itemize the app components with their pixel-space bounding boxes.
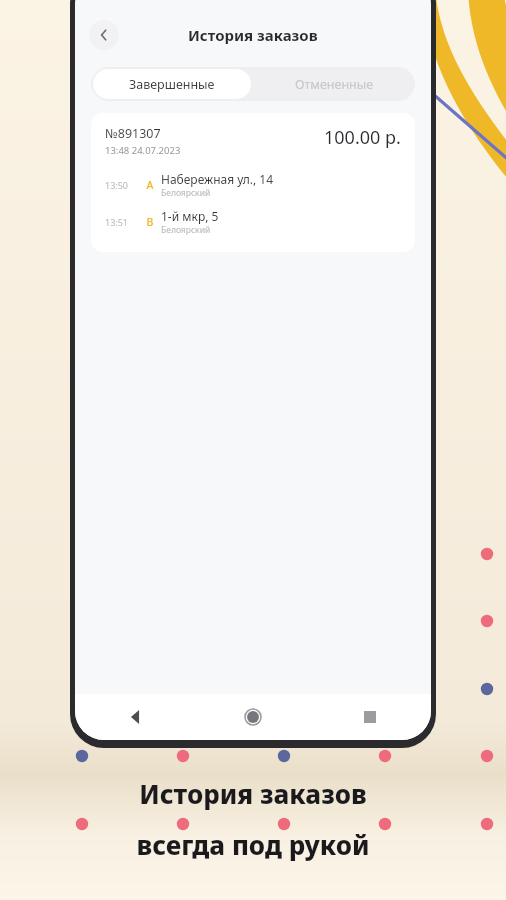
staticText: №891307 [105,125,161,142]
staticText: 100.00 р. [324,125,401,150]
staticText: A [139,178,161,192]
button[interactable]: Завершенные [93,69,251,99]
staticText: Завершенные [129,76,215,93]
staticText: Отмененные [295,76,374,93]
staticText: 13:48 24.07.2023 [105,144,181,157]
button[interactable]: №891307 [91,113,415,252]
staticText: 13:51 [105,216,139,228]
button[interactable]: Назад [89,20,119,50]
button[interactable]: Последние приложения [355,702,385,732]
staticText: Набережная ул., 14 [161,171,274,187]
staticText: История заказов [188,25,318,45]
staticText: История заказов [139,776,367,811]
staticText: Белоярский [161,187,211,199]
staticText: Белоярский [161,224,211,236]
staticText: 13:50 [105,179,139,191]
button[interactable]: Домой [238,702,268,732]
staticText: B [139,215,161,229]
button[interactable]: Назад [121,702,151,732]
button[interactable]: Отмененные [253,67,415,101]
staticText: 1-й мкр, 5 [161,208,219,224]
staticText: всегда под рукой [136,827,370,862]
